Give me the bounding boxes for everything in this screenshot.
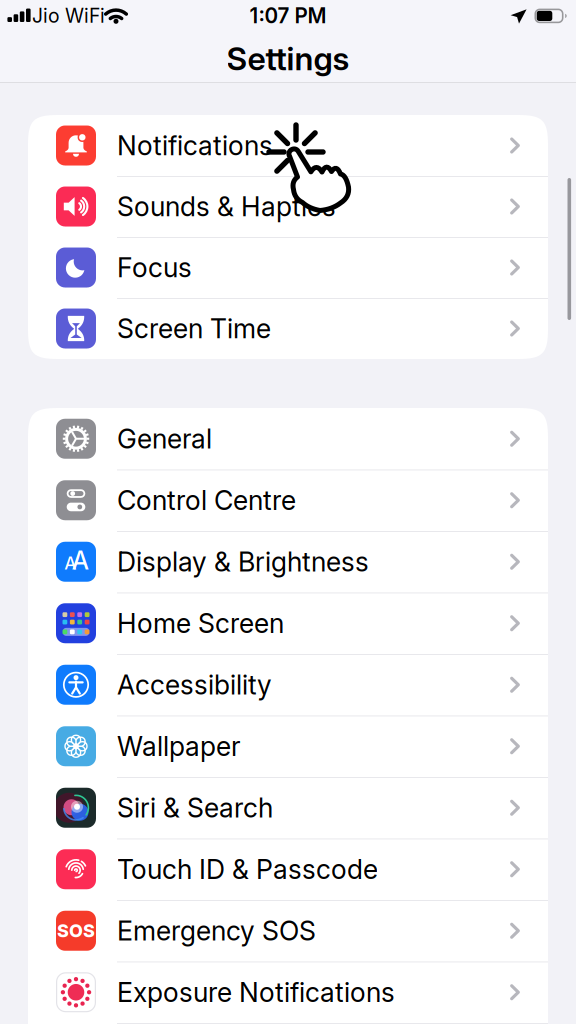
button[interactable]: Home Screen [28,592,548,654]
staticText: 1:07 PM [249,3,326,28]
button[interactable]: SOS [28,900,548,961]
button[interactable]: Exposure Notifications [28,961,548,1023]
staticText: A [72,546,89,575]
staticText: Touch ID & Passcode [117,853,378,885]
staticText: Sounds & Haptics [117,190,336,223]
staticText: Notifications [117,129,273,162]
staticText: Exposure Notifications [117,976,395,1008]
button[interactable]: General [28,408,548,469]
button[interactable]: Notifications [28,115,548,176]
staticText: A [64,553,76,574]
staticText: Display & Brightness [117,546,369,578]
staticText: Home Screen [117,607,284,639]
staticText: General [117,423,212,455]
staticText: SOS [57,920,95,942]
staticText: Control Centre [117,484,296,516]
staticText: Screen Time [117,312,271,345]
button[interactable]: Control Centre [28,469,548,531]
button[interactable]: Sounds & Haptics [28,176,548,237]
button[interactable]: Siri & Search [28,777,548,838]
staticText: Siri & Search [117,792,273,824]
staticText: Settings [226,39,349,78]
button[interactable]: Focus [28,237,548,298]
staticText: Wallpaper [117,730,241,762]
staticText: Accessibility [117,669,272,701]
button[interactable]: Screen Time [28,298,548,359]
staticText: Emergency SOS [117,915,316,947]
button[interactable]: Touch ID & Passcode [28,838,548,900]
button[interactable]: Accessibility [28,654,548,715]
staticText: Focus [117,251,192,284]
button[interactable]: Wallpaper [28,715,548,777]
button[interactable]: A [28,531,548,592]
staticText: Jio WiFi [32,4,105,27]
